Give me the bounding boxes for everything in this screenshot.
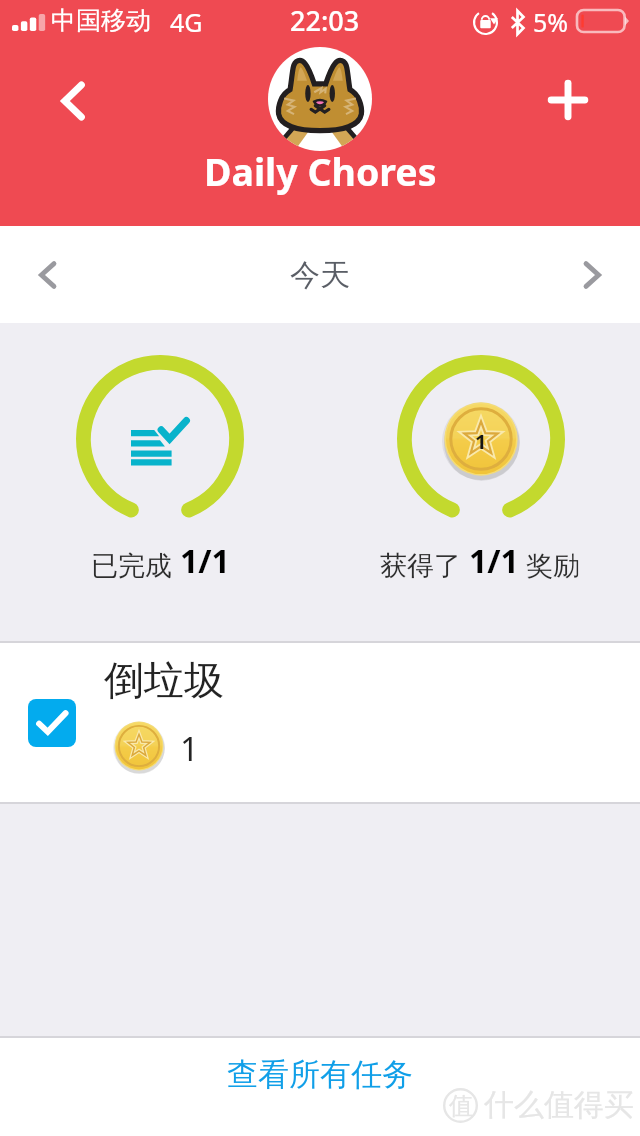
button[interactable]: Next day [560,243,624,307]
staticText: 22:03 [290,2,360,39]
staticText: 什么值得买 [484,1086,634,1124]
staticText: 1/1 [180,539,230,583]
staticText: 1 [475,428,487,455]
staticText: 5% [533,5,569,39]
staticText: 奖励 [519,546,581,583]
staticText: 值 [449,1091,473,1121]
button[interactable]: 倒垃圾 [0,643,640,802]
staticText: 已完成 [91,546,180,583]
button[interactable]: Add [538,70,598,130]
staticText: Daily Chores [204,146,437,197]
staticText: 4G [170,5,203,39]
button[interactable]: 查看所有任务 [0,1038,640,1110]
staticText: 倒垃圾 [104,655,224,705]
staticText: 今天 [290,256,350,294]
button[interactable]: Previous day [16,243,80,307]
button[interactable]: Back [42,70,104,132]
staticText: 1 [180,726,199,771]
staticText: 查看所有任务 [227,1055,413,1094]
staticText: 获得了 [380,546,469,583]
staticText: 1/1 [469,539,519,583]
staticText: 中国移动 [51,5,151,36]
